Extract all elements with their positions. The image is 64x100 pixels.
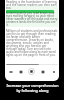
- button[interactable]: Settings: [50, 68, 57, 75]
- staticText: Millions of students and professionals u…: [6, 29, 58, 57]
- button[interactable]: Rewind 15 seconds: [7, 68, 14, 75]
- button[interactable]: Pause: [28, 68, 35, 75]
- staticText: Listening while you read keeps your eyes…: [6, 11, 58, 27]
- button[interactable]: Previous: [17, 68, 24, 75]
- button[interactable]: Next: [39, 68, 46, 75]
- staticText: Reading is the foundation of learning, a…: [6, 0, 58, 10]
- staticText: Increase your comprehension: [6, 83, 59, 88]
- staticText: by following along: [16, 88, 49, 93]
